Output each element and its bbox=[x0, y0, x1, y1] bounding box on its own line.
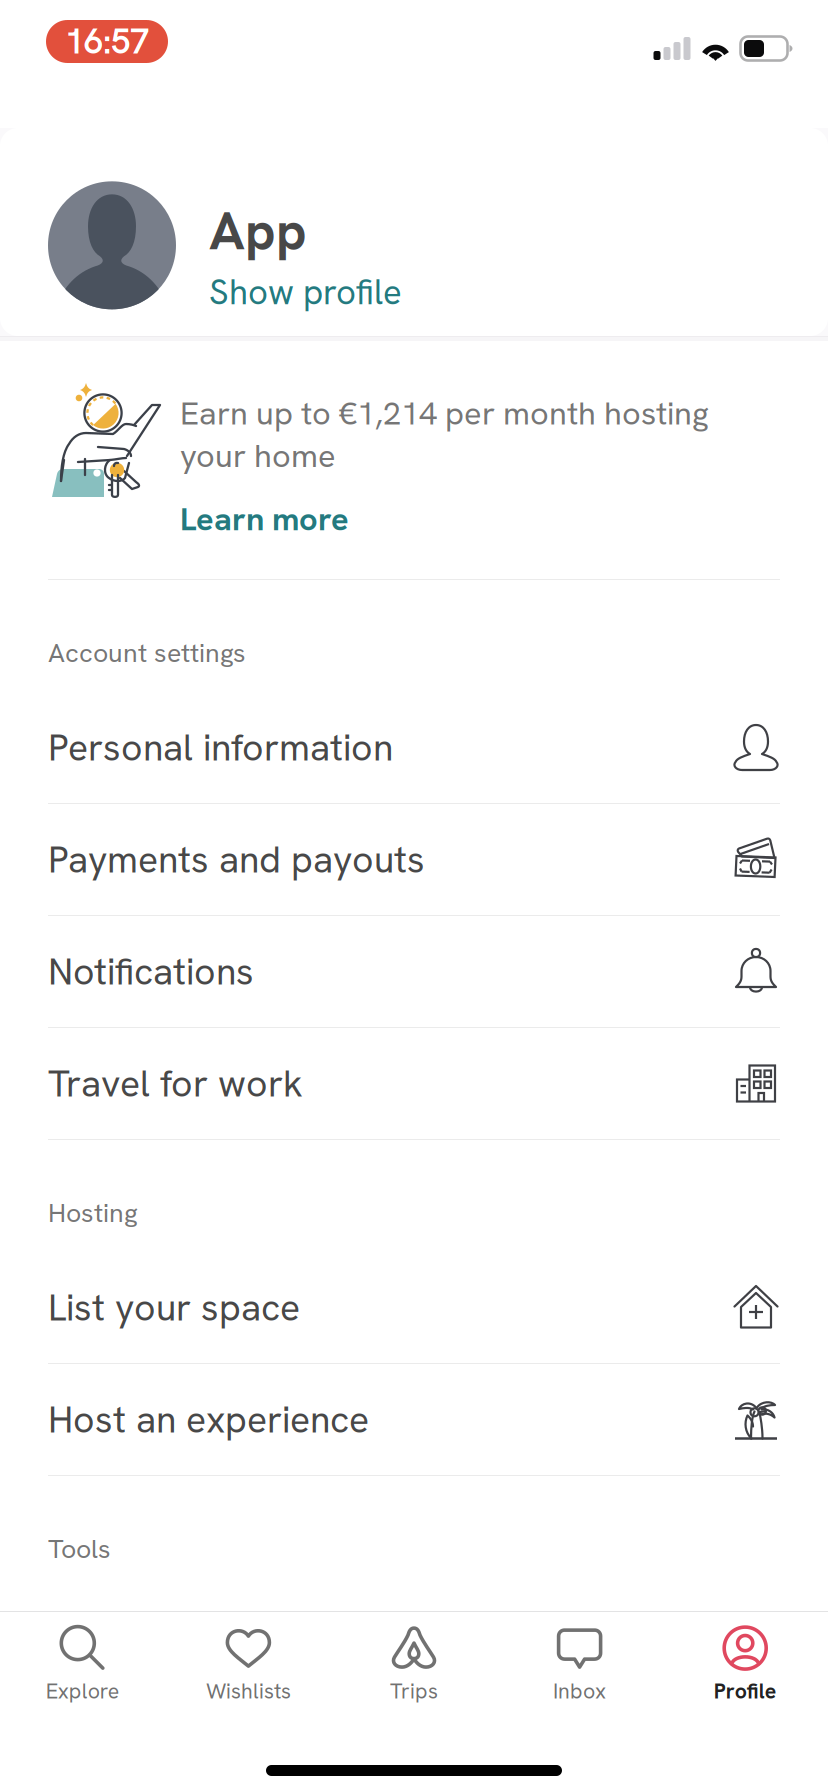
staticText: Hosting bbox=[48, 1195, 138, 1230]
button[interactable]: Earn up to €1,214 per month hosting your… bbox=[0, 341, 828, 580]
staticText: Travel for work bbox=[48, 1059, 303, 1108]
button[interactable]: Explore bbox=[0, 1614, 166, 1714]
staticText: Payments and payouts bbox=[48, 835, 425, 884]
staticText: Account settings bbox=[48, 635, 246, 670]
button[interactable]: Host an experience bbox=[0, 1364, 828, 1476]
staticText: Earn up to €1,214 per month hosting your… bbox=[180, 392, 709, 477]
staticText: Show profile bbox=[209, 269, 402, 315]
staticText: Inbox bbox=[553, 1677, 606, 1705]
button[interactable]: Travel for work bbox=[0, 1028, 828, 1140]
button[interactable]: Profile bbox=[662, 1614, 828, 1714]
staticText: Explore bbox=[46, 1677, 120, 1705]
staticText: Host an experience bbox=[48, 1395, 369, 1444]
button[interactable]: Inbox bbox=[497, 1614, 662, 1714]
button[interactable]: Payments and payouts bbox=[0, 804, 828, 916]
staticText: Profile bbox=[714, 1677, 777, 1705]
staticText: List your space bbox=[48, 1283, 300, 1332]
staticText: Trips bbox=[390, 1677, 438, 1705]
staticText: Tools bbox=[48, 1531, 111, 1566]
button[interactable]: Personal information bbox=[0, 692, 828, 804]
staticText: Learn more bbox=[180, 498, 349, 540]
button[interactable]: Wishlists bbox=[166, 1614, 331, 1714]
staticText: Wishlists bbox=[206, 1677, 291, 1705]
staticText: Notifications bbox=[48, 947, 254, 996]
button[interactable]: List your space bbox=[0, 1252, 828, 1364]
staticText: Personal information bbox=[48, 723, 393, 772]
button[interactable]: Show profile bbox=[209, 265, 402, 315]
button[interactable]: Notifications bbox=[0, 916, 828, 1028]
staticText: App bbox=[209, 196, 307, 265]
staticText: 16:57 bbox=[65, 19, 149, 64]
button[interactable]: Trips bbox=[331, 1614, 497, 1714]
